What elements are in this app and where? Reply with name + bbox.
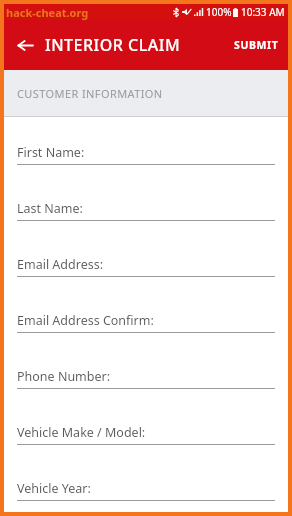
button[interactable]: Email Address: (4, 256, 288, 312)
staticText: Last Name: (17, 200, 83, 217)
staticText: hack-cheat.org (6, 5, 89, 20)
staticText: 100% (206, 5, 232, 19)
button[interactable]: First Name: (4, 144, 288, 200)
staticText: Email Address: (17, 256, 104, 273)
staticText: Phone Number: (17, 368, 111, 385)
staticText: INTERIOR CLAIM (45, 34, 181, 56)
staticText: First Name: (17, 144, 85, 161)
button[interactable]: SUBMIT (225, 28, 288, 62)
button[interactable]: Back (10, 30, 40, 60)
button[interactable]: Vehicle Make / Model: (4, 424, 288, 480)
staticText: 10:33 AM (241, 5, 285, 19)
button[interactable]: Phone Number: (4, 368, 288, 424)
button[interactable]: Vehicle Year: (4, 480, 288, 512)
button[interactable]: Email Address Confirm: (4, 312, 288, 368)
staticText: CUSTOMER INFORMATION (17, 86, 163, 101)
staticText: SUBMIT (234, 38, 279, 52)
staticText: Email Address Confirm: (17, 312, 154, 329)
staticText: Vehicle Year: (17, 480, 91, 497)
staticText: Vehicle Make / Model: (17, 424, 146, 441)
button[interactable]: Last Name: (4, 200, 288, 256)
